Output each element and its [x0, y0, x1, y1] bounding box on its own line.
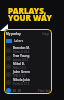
button[interactable]: Nikola Jokic: [6, 78, 50, 86]
button[interactable]: Mikal B.: [6, 62, 50, 70]
button[interactable]: Lakers: [6, 38, 50, 44]
button[interactable]: My parlay: [6, 32, 50, 36]
staticText: Points O 24.5: [13, 50, 30, 54]
button[interactable]: YOUR WAY: [8, 12, 52, 23]
staticText: Jalen Green: [13, 70, 30, 74]
button[interactable]: PARLAYS,: [8, 5, 47, 16]
staticText: Rebs O 5.5: [13, 66, 26, 70]
staticText: Assists O 8.5: [13, 58, 29, 62]
staticText: 3PM O 3.5: [13, 74, 26, 78]
staticText: Lakers: [14, 39, 24, 43]
staticText: Place bet: [38, 89, 50, 93]
button[interactable]: Place bet: [6, 87, 50, 94]
button[interactable]: Brandon M.: [6, 46, 50, 54]
staticText: Brandon M.: [13, 46, 30, 50]
staticText: Mikal B.: [13, 62, 25, 66]
staticText: Points O 27.5: [13, 82, 30, 86]
staticText: Trae Young: [13, 54, 30, 58]
staticText: Nikola Jokic: [13, 78, 31, 82]
staticText: 4 legs: [42, 32, 50, 36]
staticText: My parlay: [6, 32, 21, 36]
button[interactable]: Jalen Green: [6, 70, 50, 78]
button[interactable]: Trae Young: [6, 54, 50, 62]
